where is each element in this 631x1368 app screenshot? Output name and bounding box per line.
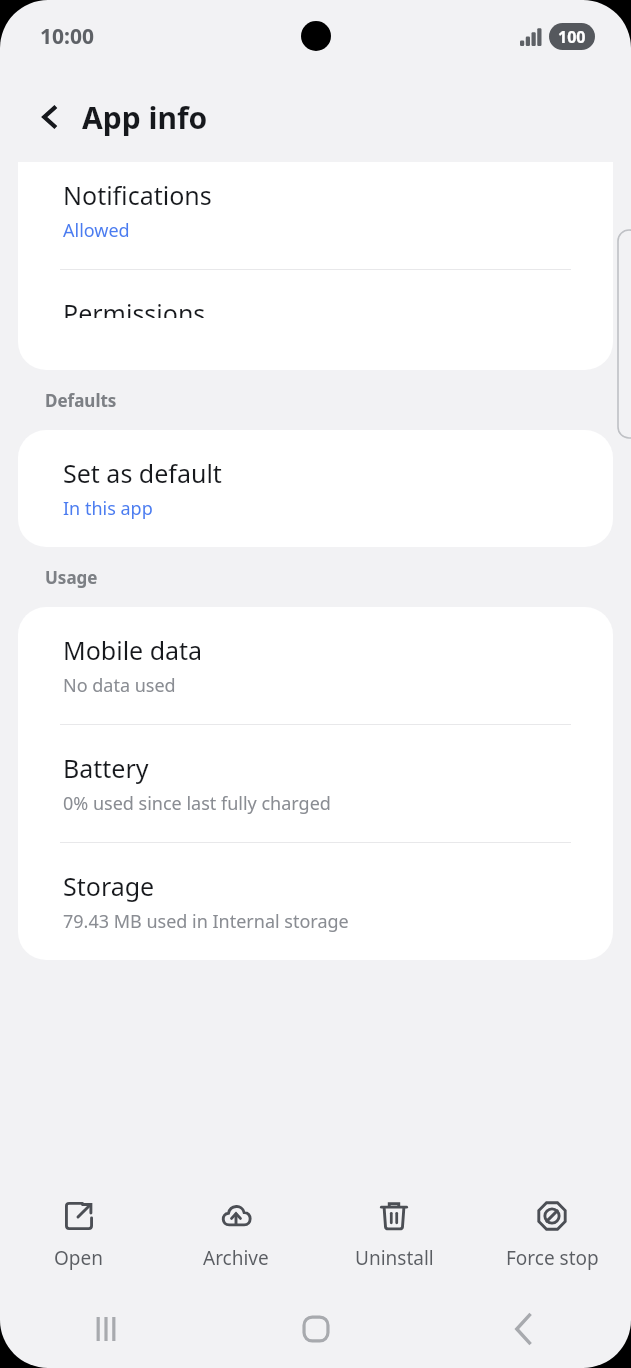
button[interactable]: Home: [211, 1290, 421, 1368]
button[interactable]: Recent apps: [0, 1290, 211, 1368]
button[interactable]: Archive: [157, 1193, 315, 1277]
staticText: Uninstall: [355, 1245, 434, 1271]
staticText: Notifications: [63, 178, 212, 212]
staticText: 79.43 MB used in Internal storage: [63, 909, 349, 934]
button[interactable]: Uninstall: [315, 1193, 473, 1277]
staticText: Permissions: [63, 296, 206, 318]
button[interactable]: Set as default: [18, 430, 613, 547]
staticText: Open: [54, 1245, 103, 1271]
staticText: App info: [82, 97, 208, 138]
staticText: No data used: [63, 673, 176, 698]
staticText: Mobile data: [63, 633, 203, 667]
button[interactable]: Permissions: [18, 270, 613, 344]
staticText: 0% used since last fully charged: [63, 791, 331, 816]
staticText: Allowed: [63, 218, 130, 243]
button[interactable]: Force stop: [473, 1193, 631, 1277]
staticText: Force stop: [506, 1245, 599, 1271]
staticText: 10:00: [40, 22, 94, 51]
button[interactable]: Back: [421, 1290, 631, 1368]
staticText: Battery: [63, 751, 149, 785]
staticText: Storage: [63, 869, 155, 903]
button[interactable]: Notifications: [18, 162, 613, 270]
button[interactable]: Open: [0, 1193, 157, 1277]
button[interactable]: Back: [26, 93, 74, 141]
staticText: Set as default: [63, 456, 222, 490]
staticText: Archive: [203, 1245, 269, 1271]
staticText: In this app: [63, 496, 153, 521]
button[interactable]: Battery: [18, 725, 613, 843]
staticText: Defaults: [45, 389, 117, 412]
button[interactable]: Mobile data: [18, 607, 613, 725]
button[interactable]: Storage: [18, 843, 613, 960]
staticText: Usage: [45, 566, 98, 589]
staticText: 100: [558, 26, 586, 48]
